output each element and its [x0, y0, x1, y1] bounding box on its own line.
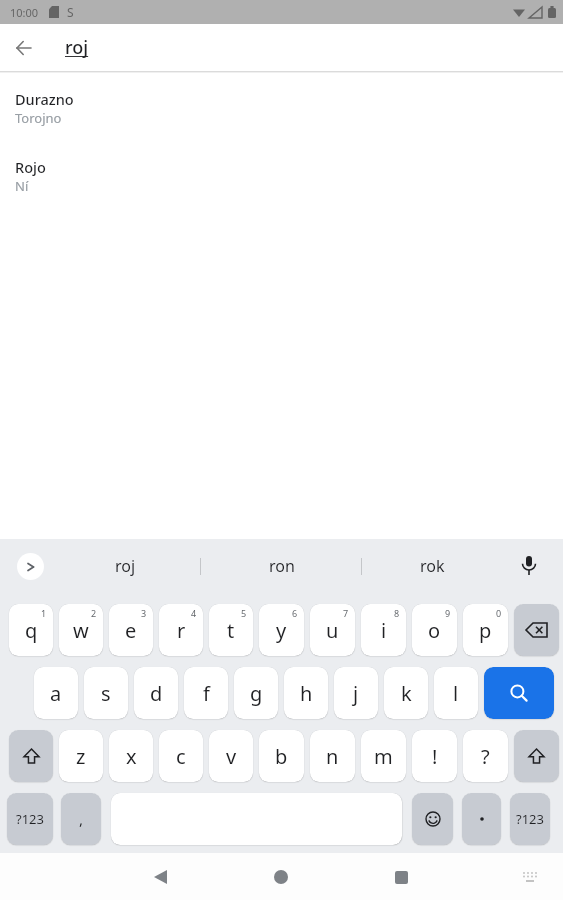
staticText: c [176, 743, 186, 770]
staticText: o [428, 617, 441, 644]
button[interactable]: b [259, 730, 304, 782]
staticText: ? [481, 743, 490, 770]
button[interactable] [17, 553, 44, 580]
staticText: 6 [292, 607, 298, 619]
button[interactable]: a [34, 667, 78, 719]
staticText: w [73, 617, 89, 644]
button[interactable]: q [9, 604, 53, 656]
button[interactable]: ?123 [510, 793, 550, 845]
staticText: t [227, 617, 235, 644]
button[interactable] [266, 862, 296, 892]
staticText: ron [269, 555, 295, 577]
staticText: Ní [15, 177, 29, 195]
button[interactable] [517, 554, 541, 578]
staticText: l [453, 680, 459, 707]
staticText: S [67, 4, 74, 20]
staticText: 2 [91, 607, 97, 619]
staticText: 7 [343, 607, 349, 619]
button[interactable] [0, 24, 48, 71]
staticText: ?123 [516, 810, 544, 828]
button[interactable]: roj [88, 555, 163, 577]
staticText: d [150, 680, 163, 707]
staticText: roj [115, 555, 136, 577]
button[interactable]: g [234, 667, 278, 719]
button[interactable]: ? [463, 730, 508, 782]
button[interactable]: s [84, 667, 128, 719]
staticText: v [226, 743, 237, 770]
staticText: , [79, 809, 84, 829]
button[interactable]: , [61, 793, 101, 845]
staticText: e [125, 617, 137, 644]
staticText: p [479, 617, 492, 644]
button[interactable] [145, 862, 175, 892]
button[interactable] [462, 793, 501, 845]
button[interactable]: z [59, 730, 103, 782]
staticText: 10:00 [10, 5, 39, 20]
staticText: r [177, 617, 186, 644]
button[interactable]: y [259, 604, 304, 656]
staticText: Durazno [15, 89, 74, 109]
staticText: 9 [445, 607, 451, 619]
button[interactable]: m [361, 730, 406, 782]
button[interactable] [514, 604, 559, 656]
button[interactable]: roj [65, 35, 89, 60]
staticText: Rojo [15, 157, 46, 177]
staticText: y [276, 617, 287, 644]
staticText: roj [65, 35, 89, 60]
button[interactable]: p [463, 604, 508, 656]
button[interactable]: t [209, 604, 253, 656]
staticText: ?123 [16, 810, 44, 828]
staticText: 1 [41, 607, 47, 619]
staticText: h [300, 680, 313, 707]
button[interactable] [515, 862, 545, 892]
staticText: f [203, 680, 210, 707]
staticText: 0 [496, 607, 502, 619]
staticText: g [250, 680, 263, 707]
staticText: 4 [191, 607, 197, 619]
button[interactable]: n [310, 730, 355, 782]
button[interactable]: r [159, 604, 203, 656]
staticText: j [353, 680, 359, 707]
staticText: s [101, 680, 111, 707]
button[interactable] [514, 730, 559, 782]
button[interactable]: ! [412, 730, 457, 782]
button[interactable]: w [59, 604, 103, 656]
button[interactable]: o [412, 604, 457, 656]
button[interactable]: f [184, 667, 228, 719]
staticText: k [401, 680, 412, 707]
button[interactable]: Rojo [0, 157, 563, 195]
staticText: x [126, 743, 137, 770]
button[interactable]: d [134, 667, 178, 719]
staticText: z [76, 743, 86, 770]
button[interactable]: c [159, 730, 203, 782]
button[interactable]: j [334, 667, 378, 719]
button[interactable]: i [361, 604, 406, 656]
button[interactable]: v [209, 730, 253, 782]
button[interactable]: l [434, 667, 478, 719]
button[interactable]: k [384, 667, 428, 719]
button[interactable]: rok [395, 555, 470, 577]
staticText: b [275, 743, 288, 770]
button[interactable]: x [109, 730, 153, 782]
button[interactable]: u [310, 604, 355, 656]
button[interactable] [9, 730, 53, 782]
staticText: n [326, 743, 339, 770]
button[interactable]: e [109, 604, 153, 656]
staticText: Torojno [15, 109, 62, 127]
button[interactable]: ron [244, 555, 319, 577]
button[interactable] [412, 793, 453, 845]
button[interactable]: ?123 [7, 793, 53, 845]
staticText: rok [420, 555, 445, 577]
button[interactable]: h [284, 667, 328, 719]
staticText: 5 [241, 607, 247, 619]
staticText: 8 [394, 607, 400, 619]
staticText: a [50, 680, 62, 707]
staticText: u [326, 617, 339, 644]
button[interactable]: Durazno [0, 82, 563, 127]
button[interactable] [386, 862, 416, 892]
staticText: i [381, 617, 387, 644]
staticText: ! [432, 743, 438, 770]
staticText: q [25, 617, 38, 644]
button[interactable] [484, 667, 554, 719]
